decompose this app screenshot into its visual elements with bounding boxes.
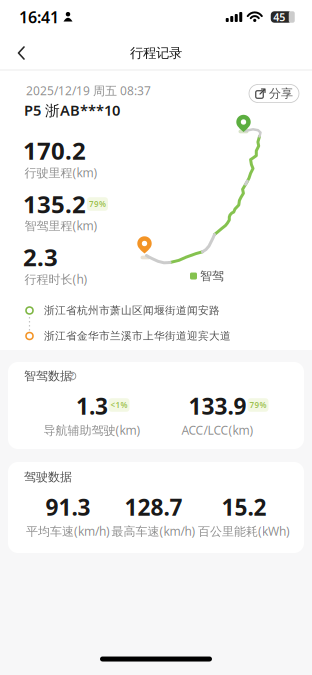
button[interactable]: 智驾数据说明 — [68, 372, 76, 380]
staticText: 最高车速(km/h) — [111, 523, 195, 539]
button[interactable]: 返回 — [12, 43, 36, 63]
staticText: 45 — [273, 10, 285, 24]
staticText: 16:41 — [19, 6, 59, 28]
staticText: 170.2 — [23, 135, 86, 166]
staticText: 行驶里程(km) — [24, 164, 97, 180]
staticText: 百公里能耗(kWh) — [198, 523, 290, 539]
staticText: ACC/LCC(km) — [181, 422, 253, 438]
staticText: 79% — [89, 199, 106, 209]
staticText: 智驾里程(km) — [24, 217, 97, 233]
staticText: 79% — [249, 400, 266, 410]
staticText: 智驾 — [200, 269, 224, 283]
staticText: 133.9 — [188, 391, 246, 421]
staticText: <1% — [110, 400, 127, 410]
staticText: 1.3 — [76, 391, 108, 421]
staticText: 行程时长(h) — [24, 271, 87, 287]
staticText: 浙江省金华市兰溪市上华街道迎宾大道 — [44, 329, 231, 342]
staticText: 91.3 — [45, 492, 90, 522]
staticText: 128.7 — [124, 492, 182, 522]
staticText: 行程记录 — [130, 45, 182, 61]
staticText: 浙江省杭州市萧山区闻堰街道闻安路 — [44, 304, 220, 317]
staticText: ? — [70, 371, 74, 381]
staticText: 驾驶数据 — [24, 470, 72, 484]
staticText: 智驾数据 — [24, 369, 72, 383]
staticText: 导航辅助驾驶(km) — [43, 422, 140, 438]
staticText: 2.3 — [23, 241, 58, 273]
staticText: 分享 — [269, 86, 293, 101]
staticText: 平均车速(km/h) — [26, 523, 110, 539]
staticText: P5 浙AB***10 — [24, 100, 120, 120]
staticText: 2025/12/19 周五 08:37 — [26, 82, 151, 98]
button[interactable]: 分享 — [249, 84, 299, 102]
staticText: 135.2 — [23, 188, 86, 220]
staticText: 15.2 — [221, 492, 266, 522]
